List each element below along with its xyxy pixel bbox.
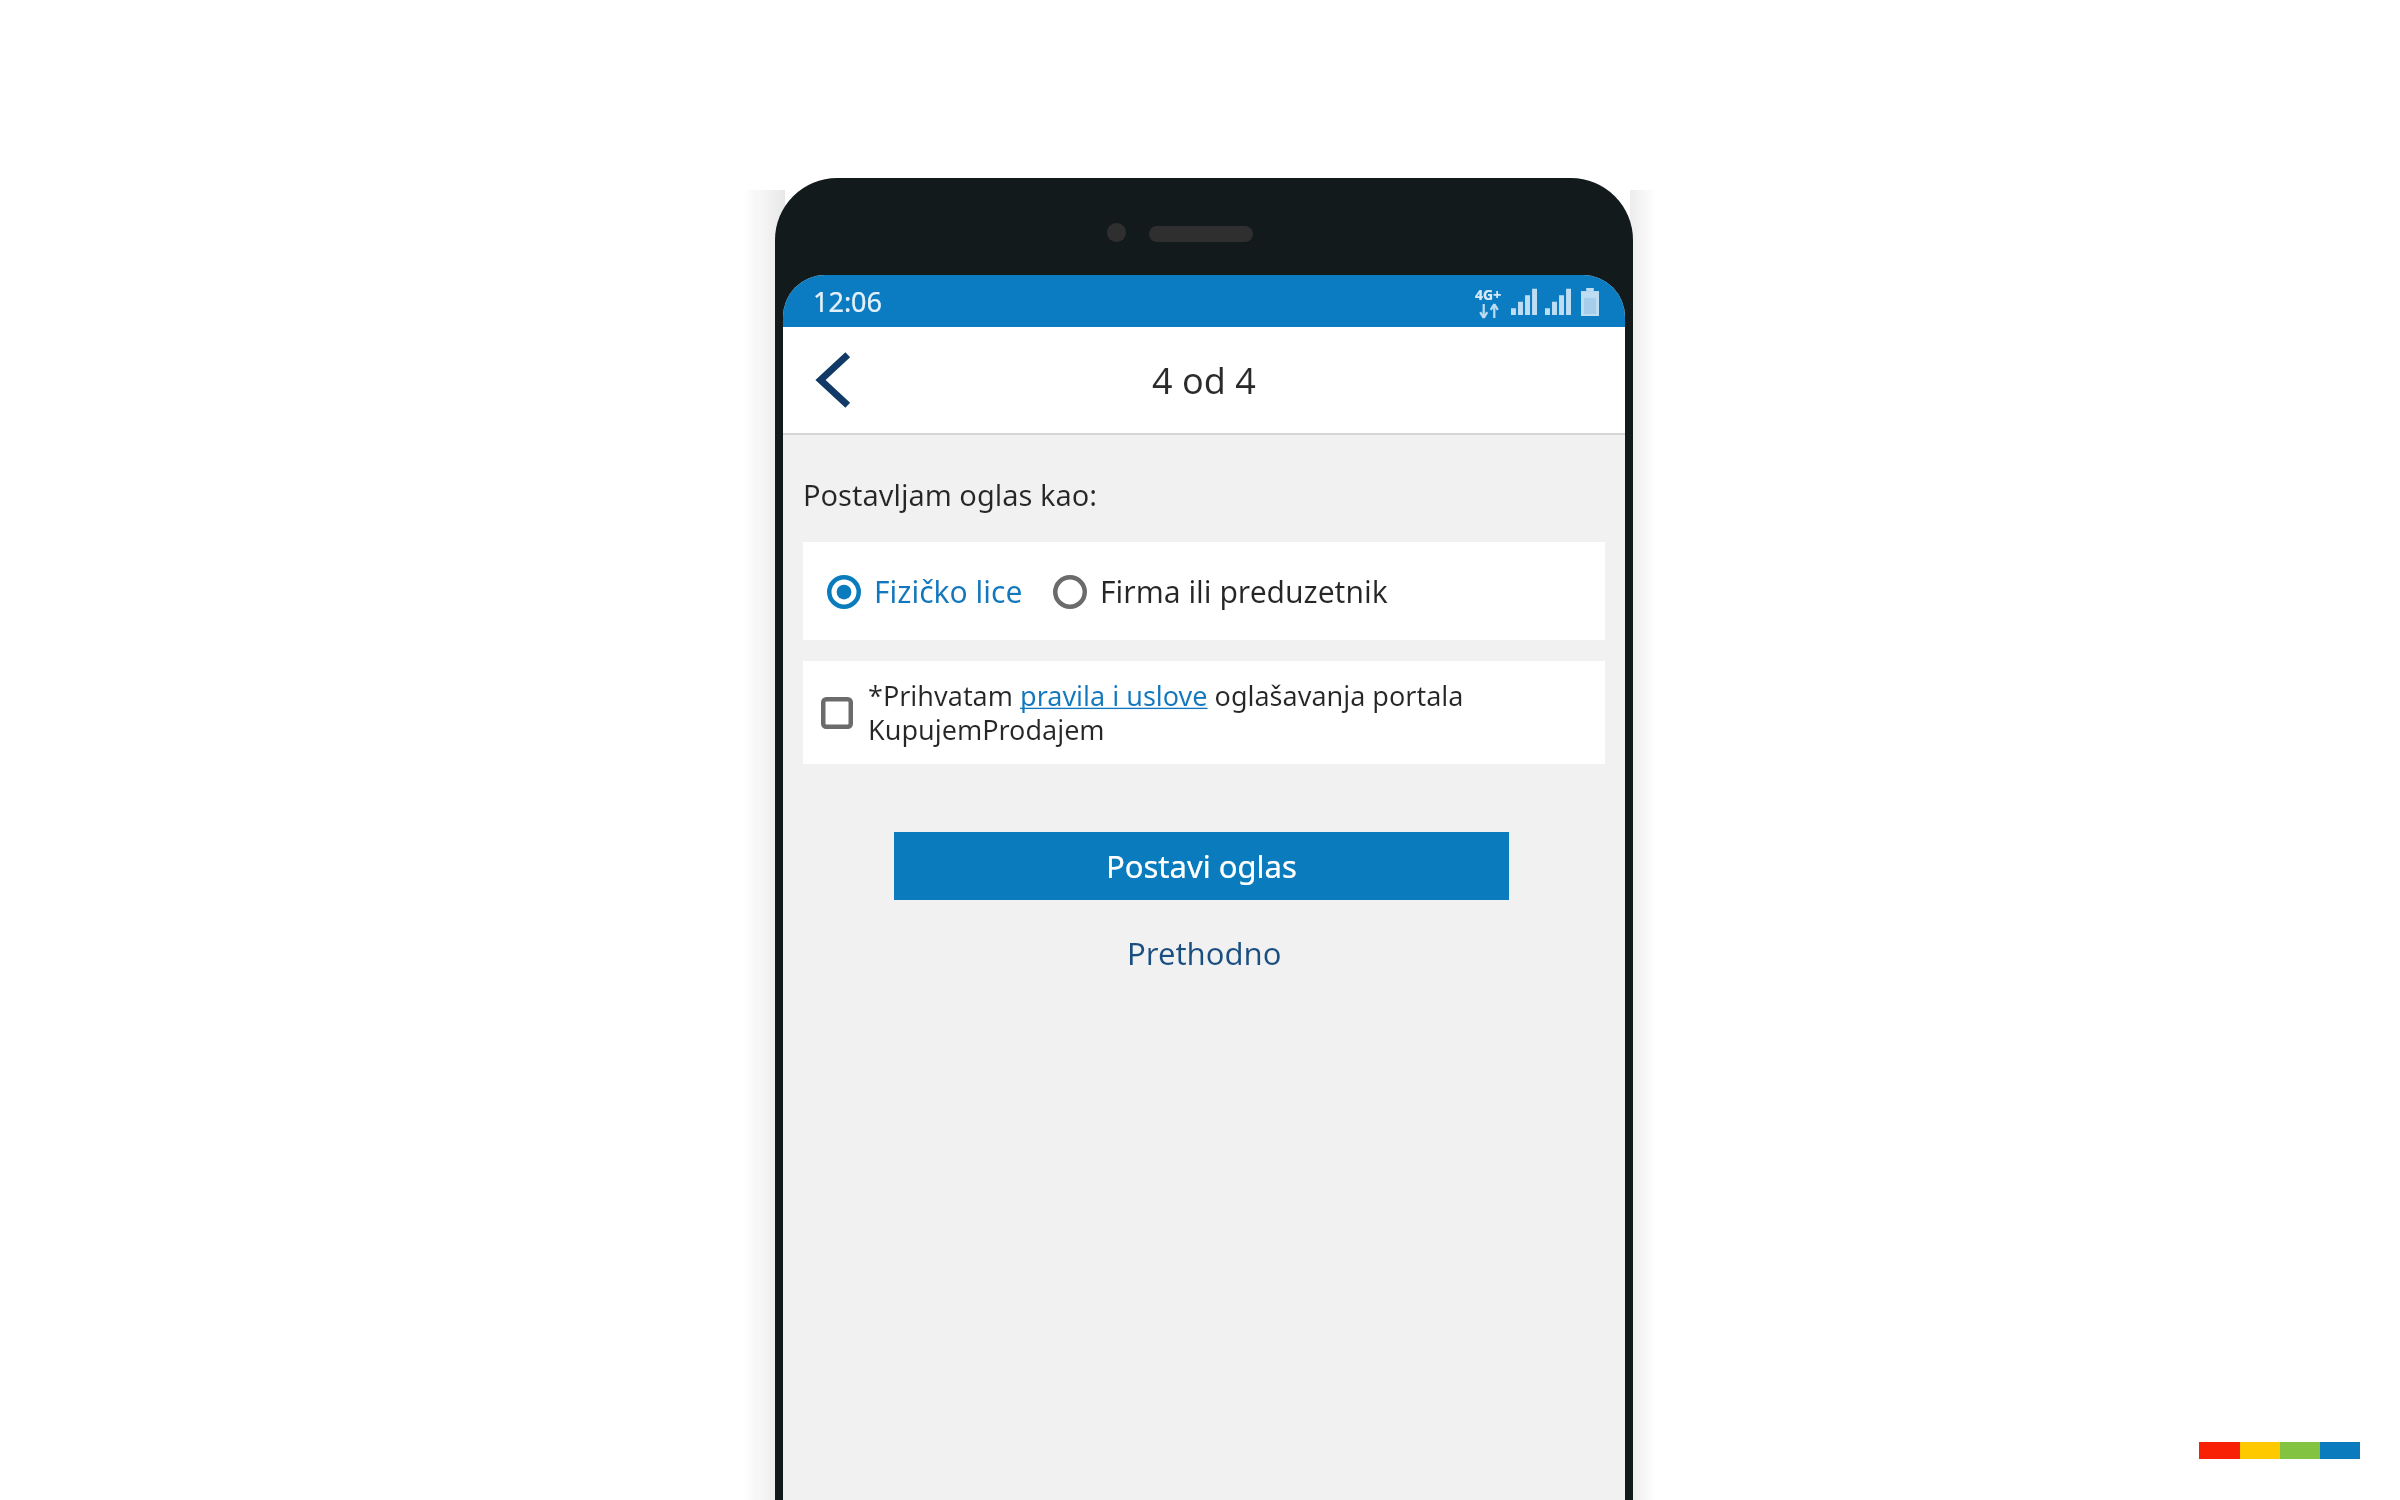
button[interactable]: Firma ili preduzetnik <box>1049 561 1392 622</box>
button[interactable]: *Prihvatam pravila i uslove oglašavanja … <box>803 661 1605 764</box>
button[interactable]: Prethodno <box>1101 920 1308 986</box>
button[interactable]: Nazad <box>795 341 873 419</box>
button[interactable]: Postavi oglas <box>894 832 1509 900</box>
staticText: 4G+ <box>1475 285 1502 304</box>
staticText: Fizičko lice <box>874 571 1023 612</box>
staticText: Postavljam oglas kao: <box>803 475 1097 514</box>
staticText: Postavi oglas <box>1106 845 1297 887</box>
staticText: 12:06 <box>813 283 883 320</box>
staticText: Firma ili preduzetnik <box>1100 571 1388 612</box>
button[interactable]: Fizičko lice <box>823 561 1027 622</box>
staticText: Prethodno <box>1127 932 1282 974</box>
staticText: 4 od 4 <box>1152 356 1256 405</box>
staticText: *Prihvatam pravila i uslove oglašavanja … <box>868 677 1593 748</box>
